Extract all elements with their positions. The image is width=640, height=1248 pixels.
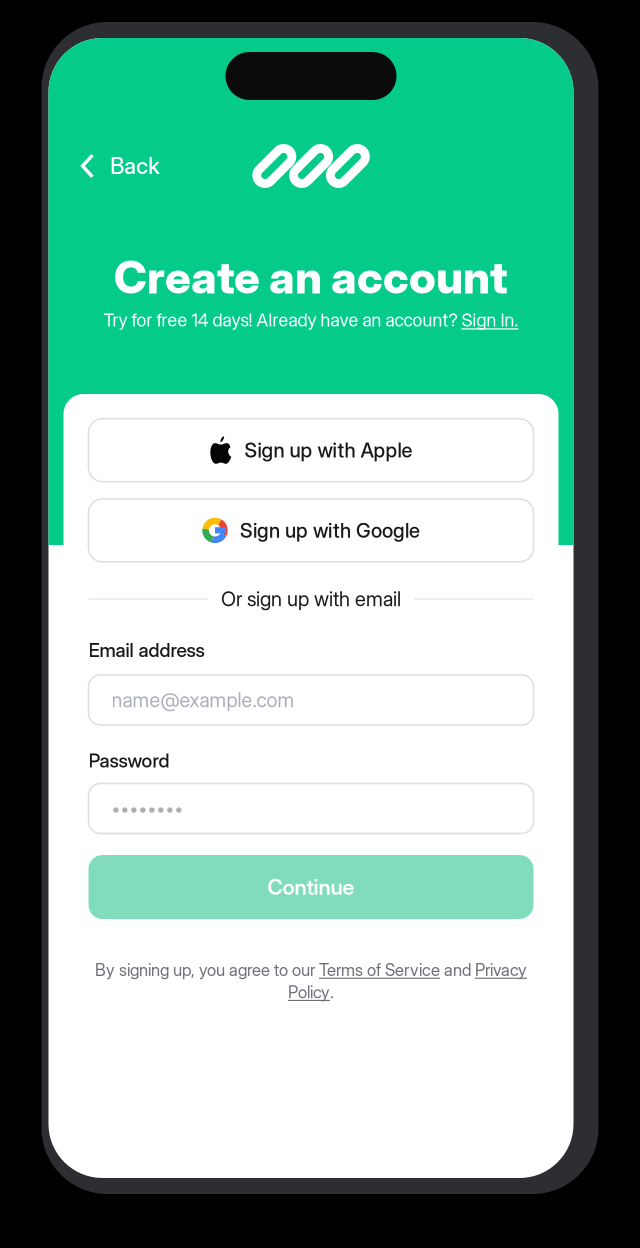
- staticText: Sign up with Google: [240, 518, 420, 542]
- button[interactable]: Terms of Service: [319, 960, 440, 980]
- button[interactable]: Privacy: [475, 960, 527, 980]
- staticText: Or sign up with email: [221, 587, 401, 611]
- staticText: Sign In.: [461, 309, 518, 331]
- button[interactable]: Continue: [88, 855, 533, 919]
- staticText: Privacy: [475, 960, 527, 980]
- button[interactable]: Policy: [288, 982, 330, 1002]
- button[interactable]: Sign up with Apple: [88, 419, 533, 482]
- staticText: Try for free 14 days! Already have an ac…: [103, 309, 461, 331]
- staticText: Back: [110, 153, 160, 179]
- staticText: Policy: [288, 982, 330, 1002]
- staticText: Create an account: [114, 250, 508, 304]
- staticText: Password: [88, 749, 169, 772]
- button[interactable]: Sign up with Google: [88, 499, 533, 562]
- staticText: ••••••••: [111, 798, 183, 819]
- button[interactable]: Back: [59, 140, 184, 192]
- staticText: By signing up, you agree to our: [95, 960, 319, 980]
- staticText: Email address: [88, 638, 204, 662]
- staticText: Sign up with Apple: [244, 438, 412, 462]
- button[interactable]: Sign In.: [461, 309, 518, 331]
- staticText: name@example.com: [111, 688, 294, 712]
- staticText: Terms of Service: [319, 960, 440, 980]
- staticText: and: [440, 960, 475, 980]
- staticText: Continue: [267, 874, 354, 900]
- staticText: .: [330, 982, 334, 1002]
